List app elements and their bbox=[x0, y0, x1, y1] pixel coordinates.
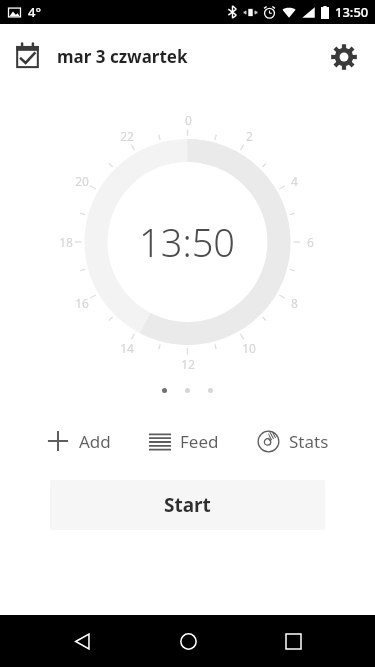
staticText: 20 bbox=[75, 173, 89, 189]
button[interactable]: mar 3 czwartek bbox=[10, 37, 192, 76]
button[interactable]: Stats bbox=[255, 424, 331, 459]
staticText: 0 bbox=[185, 112, 192, 128]
button[interactable]: Add bbox=[44, 423, 113, 459]
staticText: 13:50 bbox=[335, 3, 369, 21]
button[interactable]: Home bbox=[164, 617, 212, 665]
button[interactable]: Settings bbox=[325, 38, 363, 76]
button[interactable]: Start bbox=[50, 480, 325, 530]
staticText: 16 bbox=[75, 295, 89, 311]
staticText: 13:50 bbox=[139, 216, 236, 268]
staticText: Feed bbox=[180, 430, 219, 453]
button[interactable]: Feed bbox=[147, 424, 221, 459]
staticText: 22 bbox=[120, 128, 134, 144]
staticText: Add bbox=[79, 430, 111, 453]
staticText: mar 3 czwartek bbox=[57, 45, 188, 68]
staticText: 12 bbox=[181, 356, 195, 372]
button[interactable]: Back bbox=[58, 617, 106, 665]
staticText: Stats bbox=[289, 430, 329, 453]
staticText: Start bbox=[164, 492, 211, 518]
button[interactable]: Recent apps bbox=[269, 617, 317, 665]
staticText: 18 bbox=[59, 234, 73, 250]
staticText: 8 bbox=[291, 295, 298, 311]
staticText: 10 bbox=[242, 340, 256, 356]
staticText: 6 bbox=[307, 234, 314, 250]
staticText: 2 bbox=[246, 128, 253, 144]
staticText: 14 bbox=[120, 340, 134, 356]
staticText: 4° bbox=[28, 3, 41, 21]
staticText: 4 bbox=[291, 173, 298, 189]
